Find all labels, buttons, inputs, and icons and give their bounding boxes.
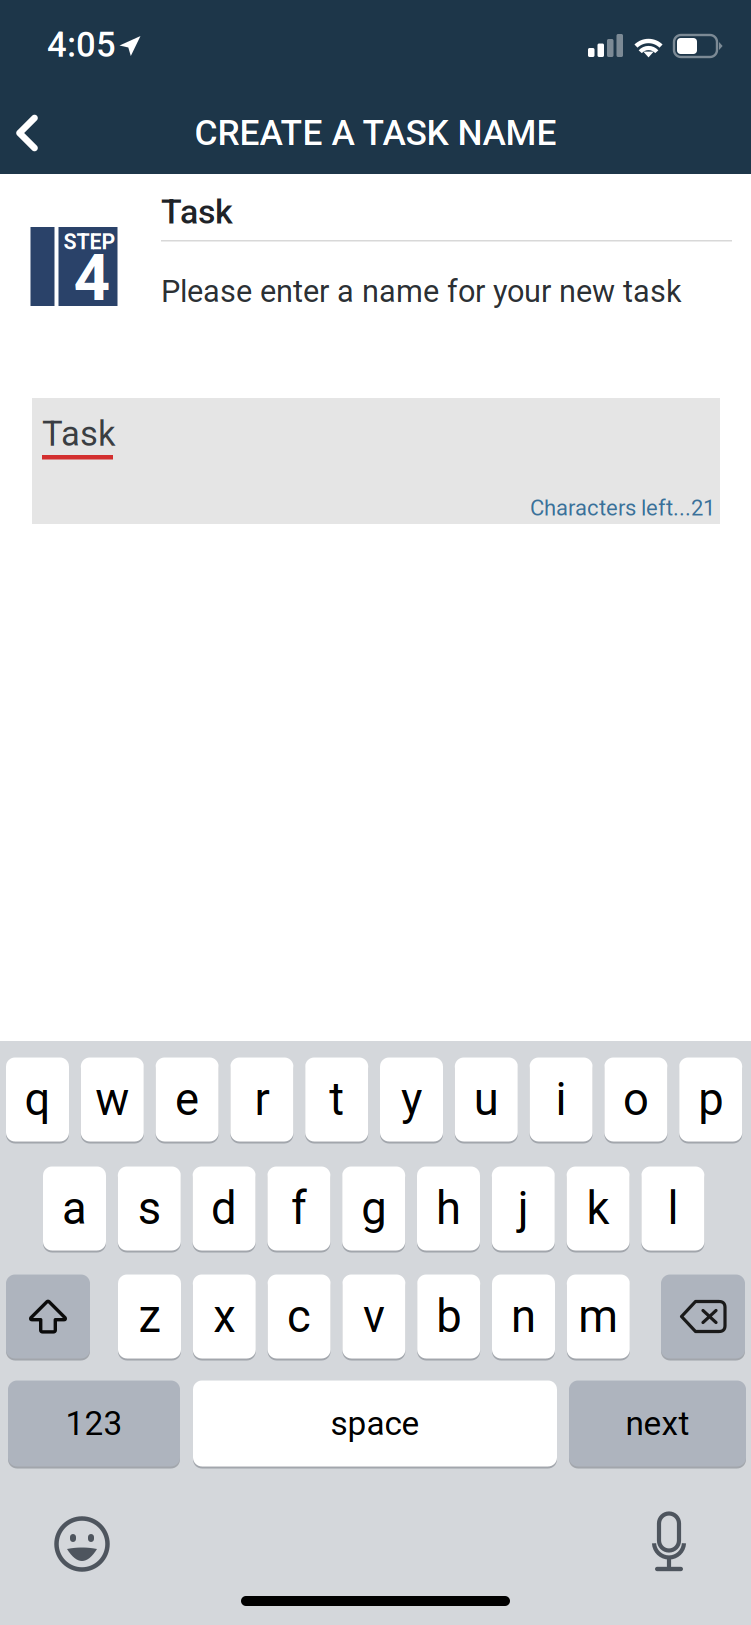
staticText: u xyxy=(474,1073,499,1126)
button[interactable]: d xyxy=(193,1165,256,1252)
staticText: o xyxy=(623,1073,649,1126)
staticText: 123 xyxy=(65,1404,122,1443)
staticText: c xyxy=(287,1290,311,1343)
button[interactable]: z xyxy=(118,1273,181,1360)
button[interactable]: c xyxy=(268,1273,331,1360)
staticText: i xyxy=(556,1073,567,1126)
button[interactable]: 123 xyxy=(8,1379,180,1468)
button[interactable]: o xyxy=(604,1056,667,1143)
button[interactable]: Shift xyxy=(6,1273,90,1360)
button[interactable]: Dictation xyxy=(637,1501,701,1583)
staticText: y xyxy=(401,1073,422,1126)
button[interactable]: e xyxy=(156,1056,219,1143)
staticText: r xyxy=(254,1073,269,1126)
button[interactable]: w xyxy=(81,1056,144,1143)
staticText: g xyxy=(361,1182,386,1235)
button[interactable]: next xyxy=(569,1379,746,1468)
staticText: d xyxy=(211,1182,237,1235)
staticText: Task xyxy=(42,414,116,454)
button[interactable]: a xyxy=(43,1165,106,1252)
staticText: Please enter a name for your new task xyxy=(161,273,682,309)
button[interactable]: h xyxy=(417,1165,480,1252)
staticText: k xyxy=(587,1182,610,1235)
button[interactable]: i xyxy=(530,1056,593,1143)
staticText: a xyxy=(62,1182,87,1235)
button[interactable]: p xyxy=(679,1056,742,1143)
staticText: v xyxy=(363,1290,385,1343)
button[interactable]: q xyxy=(6,1056,69,1143)
staticText: q xyxy=(24,1073,50,1126)
button[interactable]: Back xyxy=(0,92,63,173)
button[interactable]: t xyxy=(305,1056,368,1143)
button[interactable]: b xyxy=(417,1273,480,1360)
staticText: next xyxy=(625,1404,689,1443)
button[interactable]: r xyxy=(230,1056,293,1143)
staticText: e xyxy=(175,1073,199,1126)
staticText: Characters left...21 xyxy=(530,495,715,521)
staticText: s xyxy=(138,1182,161,1235)
staticText: z xyxy=(138,1290,160,1343)
button[interactable]: f xyxy=(267,1165,330,1252)
button[interactable]: Delete xyxy=(661,1273,745,1360)
button[interactable]: space xyxy=(193,1379,557,1468)
staticText: 4 xyxy=(73,240,110,315)
staticText: j xyxy=(518,1182,529,1235)
button[interactable]: m xyxy=(567,1273,630,1360)
staticText: n xyxy=(511,1290,536,1343)
button[interactable]: s xyxy=(118,1165,181,1252)
staticText: l xyxy=(667,1182,678,1235)
button[interactable]: l xyxy=(641,1165,704,1252)
staticText: b xyxy=(436,1290,461,1343)
button[interactable]: Emoji xyxy=(43,1505,121,1583)
staticText: STEP xyxy=(63,229,115,254)
button[interactable]: v xyxy=(342,1273,405,1360)
staticText: space xyxy=(330,1404,419,1443)
staticText: x xyxy=(213,1290,235,1343)
staticText: Task xyxy=(161,192,233,232)
button[interactable]: y xyxy=(380,1056,443,1143)
button[interactable]: n xyxy=(492,1273,555,1360)
button[interactable]: x xyxy=(193,1273,256,1360)
button[interactable]: j xyxy=(492,1165,555,1252)
button[interactable]: u xyxy=(455,1056,518,1143)
staticText: 4:05 xyxy=(47,25,116,65)
staticText: m xyxy=(578,1290,618,1343)
button[interactable]: k xyxy=(567,1165,630,1252)
staticText: h xyxy=(436,1182,461,1235)
staticText: CREATE A TASK NAME xyxy=(194,112,556,154)
staticText: f xyxy=(291,1182,307,1235)
button[interactable]: g xyxy=(342,1165,405,1252)
staticText: t xyxy=(329,1073,344,1126)
staticText: w xyxy=(95,1073,129,1126)
staticText: p xyxy=(698,1073,723,1126)
